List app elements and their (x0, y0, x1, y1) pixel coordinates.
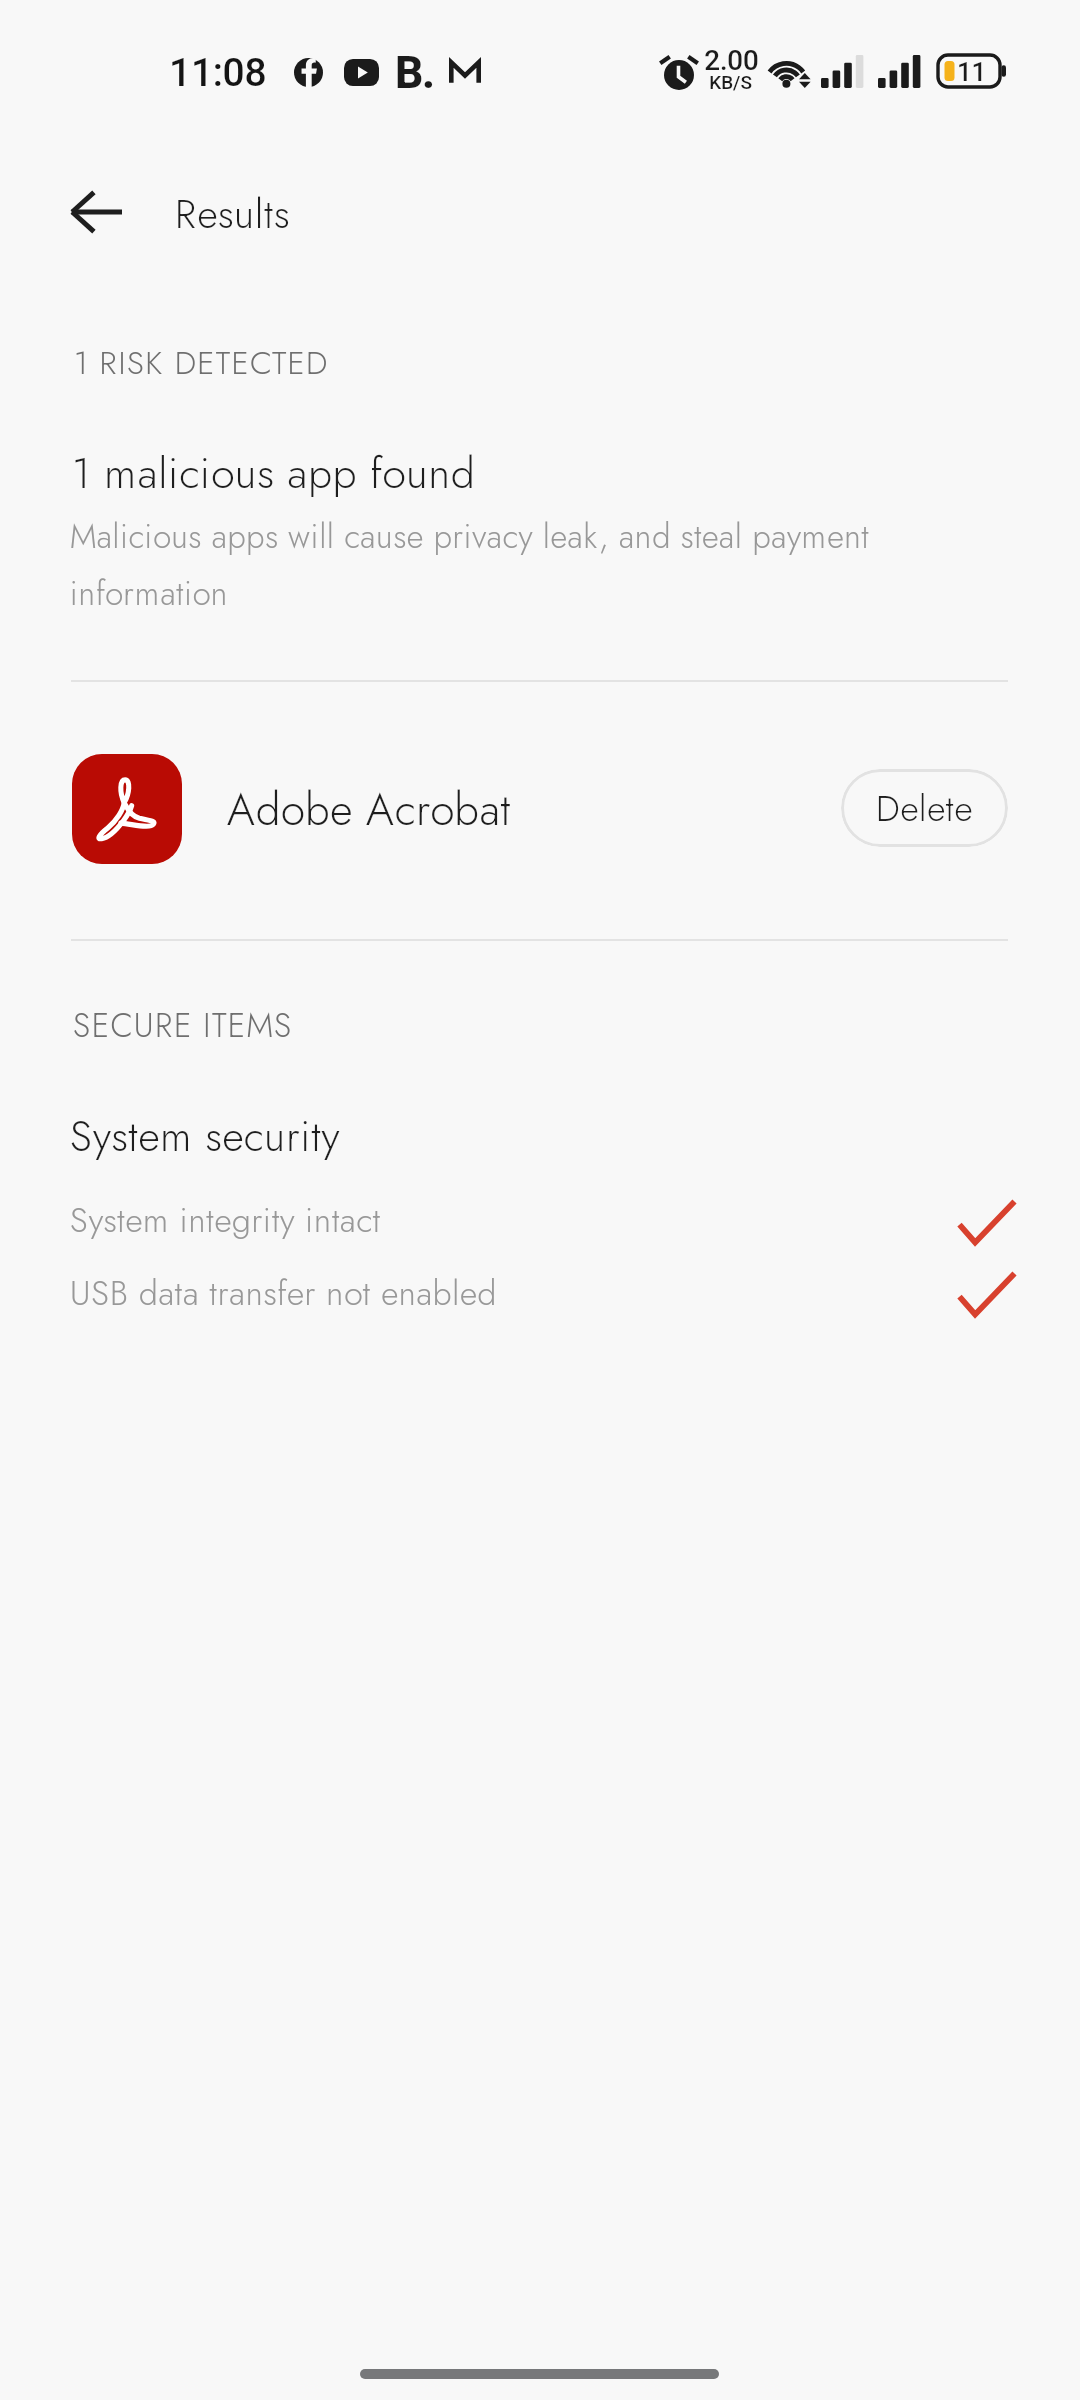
staticText: Delete (876, 782, 974, 834)
staticText: 1 malicious app found (72, 442, 476, 504)
staticText: 2.00 (704, 44, 759, 77)
staticText: System integrity intact (70, 1196, 381, 1245)
staticText: USB data transfer not enabled (70, 1269, 497, 1318)
staticText: 1 RISK DETECTED (74, 339, 329, 386)
staticText: KB/S (709, 71, 752, 93)
button[interactable]: Back (36, 152, 156, 272)
staticText: Malicious apps will cause privacy leak, … (70, 513, 900, 618)
staticText: B. (394, 47, 434, 99)
staticText: Results (175, 185, 291, 243)
button[interactable]: Secure (958, 1200, 1016, 1244)
staticText: SECURE ITEMS (73, 1002, 293, 1050)
staticText: 11 (957, 57, 987, 87)
staticText: System security (70, 1106, 341, 1167)
button[interactable]: Delete (841, 769, 1008, 847)
button[interactable]: Secure (958, 1272, 1016, 1316)
staticText: 11:08 (169, 50, 267, 96)
staticText: Adobe Acrobat (227, 778, 512, 842)
